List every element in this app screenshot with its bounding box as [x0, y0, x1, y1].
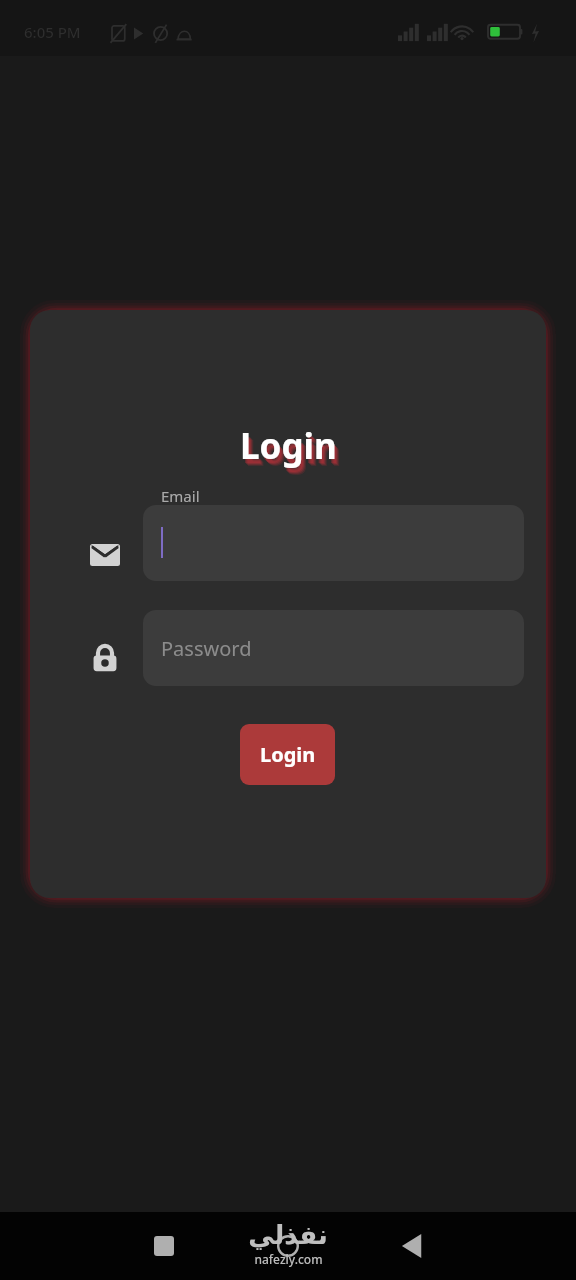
staticText: Email	[161, 486, 200, 506]
button[interactable]	[143, 505, 524, 581]
staticText: 6:05 PM	[24, 22, 81, 42]
staticText: Login	[244, 428, 341, 476]
other: Password	[87, 640, 123, 676]
staticText: Password	[161, 635, 252, 662]
other: Email	[87, 537, 123, 573]
staticText: Login	[245, 429, 342, 477]
staticText: Login	[242, 426, 339, 474]
button[interactable]: Home	[272, 1230, 304, 1262]
staticText: Login	[260, 741, 316, 768]
button[interactable]: Login	[240, 724, 335, 785]
staticText: نفذلي	[248, 1220, 328, 1250]
staticText: Login	[240, 422, 337, 470]
staticText: Login	[243, 427, 340, 475]
button[interactable]: Recent apps	[148, 1230, 180, 1262]
staticText: nafezly.com	[254, 1251, 323, 1267]
button[interactable]: Password	[143, 610, 524, 686]
button[interactable]: Back	[396, 1230, 428, 1262]
